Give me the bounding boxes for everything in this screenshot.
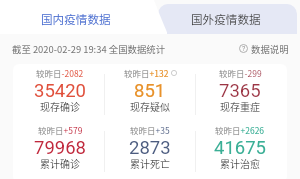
- staticText: 截至 2020-02-29 19:34 全国数据统计: [12, 42, 166, 56]
- button[interactable]: 较昨日-299: [195, 64, 285, 121]
- staticText: 较昨日+35: [130, 124, 170, 136]
- staticText: 现存重症: [220, 99, 260, 113]
- staticText: 较昨日-299: [219, 67, 262, 79]
- staticText: 851: [134, 80, 166, 102]
- button[interactable]: 较昨日+2626: [195, 121, 285, 178]
- staticText: 现存确诊: [40, 99, 80, 113]
- staticText: ?: [242, 45, 246, 53]
- staticText: 41675: [214, 137, 266, 159]
- staticText: 累计死亡: [130, 156, 170, 170]
- staticText: 79968: [34, 137, 86, 159]
- button[interactable]: 较昨日+579: [15, 121, 105, 178]
- staticText: 较昨日+2626: [215, 124, 265, 136]
- staticText: 较昨日+132: [124, 67, 169, 79]
- staticText: 较昨日+579: [38, 124, 83, 136]
- staticText: 7365: [219, 80, 261, 102]
- button[interactable]: 国内疫情数据: [0, 0, 167, 34]
- button[interactable]: 较昨日+35: [105, 121, 195, 178]
- staticText: 35420: [34, 80, 86, 102]
- staticText: 累计确诊: [40, 156, 80, 170]
- staticText: 现存疑似: [130, 99, 170, 113]
- staticText: 较昨日-2082: [36, 67, 84, 79]
- button[interactable]: Data notes: [239, 42, 289, 54]
- button[interactable]: 国外疫情数据: [158, 4, 297, 34]
- staticText: 数据说明: [251, 42, 289, 54]
- staticText: 累计治愈: [220, 156, 260, 170]
- button[interactable]: 较昨日-2082: [15, 64, 105, 121]
- button[interactable]: 较昨日+132: [105, 64, 195, 121]
- staticText: 国内疫情数据: [41, 11, 111, 28]
- staticText: 国外疫情数据: [191, 11, 261, 28]
- other: Data notes: [239, 44, 248, 53]
- staticText: 2873: [129, 137, 171, 159]
